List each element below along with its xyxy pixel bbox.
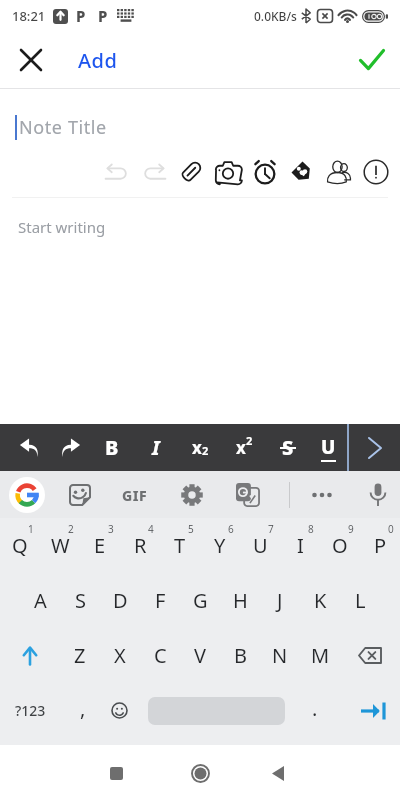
staticText: H xyxy=(233,587,248,614)
button[interactable] xyxy=(252,159,278,185)
button[interactable]: G xyxy=(180,573,220,628)
staticText: Note Title xyxy=(19,115,107,140)
button[interactable] xyxy=(98,755,134,791)
button[interactable] xyxy=(182,755,218,791)
button[interactable] xyxy=(180,483,204,507)
button[interactable]: T xyxy=(160,518,200,573)
button[interactable] xyxy=(236,483,260,507)
staticText: I xyxy=(297,532,304,559)
button[interactable]: O xyxy=(320,518,360,573)
button[interactable]: R xyxy=(120,518,160,573)
button[interactable] xyxy=(345,683,400,738)
button[interactable]: V xyxy=(180,628,220,683)
button[interactable]: Q xyxy=(0,518,40,573)
staticText: 4 xyxy=(148,522,154,536)
button[interactable] xyxy=(363,159,389,185)
button[interactable]: X xyxy=(100,628,140,683)
button[interactable] xyxy=(260,755,296,791)
button[interactable]: H xyxy=(220,573,260,628)
staticText: Z xyxy=(74,642,86,669)
button[interactable]: ?123 xyxy=(0,683,60,738)
button[interactable]: I xyxy=(280,518,320,573)
button[interactable] xyxy=(340,628,400,683)
staticText: 0 xyxy=(388,522,394,536)
button[interactable]: I xyxy=(134,424,178,471)
button[interactable]: L xyxy=(340,573,380,628)
staticText: N xyxy=(272,642,288,669)
staticText: T xyxy=(174,532,186,559)
staticText: Start writing xyxy=(18,217,106,237)
button[interactable] xyxy=(106,683,132,738)
button[interactable]: J xyxy=(260,573,300,628)
staticText: P xyxy=(98,6,108,26)
staticText: 1 xyxy=(28,522,34,536)
staticText: C xyxy=(154,642,167,669)
staticText: x xyxy=(192,436,202,459)
button[interactable]: F xyxy=(140,573,180,628)
button[interactable]: Z xyxy=(60,628,100,683)
button[interactable] xyxy=(9,477,45,513)
staticText: 5 xyxy=(188,522,194,536)
button[interactable] xyxy=(50,424,90,471)
staticText: ?123 xyxy=(15,701,46,720)
button[interactable] xyxy=(20,49,42,71)
button[interactable] xyxy=(178,159,204,185)
staticText: Q xyxy=(12,532,28,559)
button[interactable]: U xyxy=(240,518,280,573)
button[interactable] xyxy=(104,159,130,185)
button[interactable]: Note Title xyxy=(0,89,400,155)
staticText: X xyxy=(114,642,126,669)
staticText: J xyxy=(277,587,283,614)
button[interactable]: W xyxy=(40,518,80,573)
staticText: Y xyxy=(214,532,226,559)
staticText: M xyxy=(311,642,330,669)
staticText: 7 xyxy=(268,522,274,536)
button[interactable]: . xyxy=(285,683,345,738)
staticText: 2 xyxy=(202,443,209,458)
button[interactable]: A xyxy=(20,573,60,628)
button[interactable] xyxy=(66,481,94,509)
button[interactable] xyxy=(10,424,50,471)
button[interactable] xyxy=(359,48,385,72)
button[interactable]: N xyxy=(260,628,300,683)
button[interactable] xyxy=(215,159,241,185)
button[interactable]: B xyxy=(220,628,260,683)
button[interactable] xyxy=(141,159,167,185)
staticText: F xyxy=(155,587,166,614)
button[interactable]: E xyxy=(80,518,120,573)
button[interactable]: P xyxy=(360,518,400,573)
button[interactable]: U xyxy=(310,424,347,471)
staticText: GIF xyxy=(122,486,148,505)
staticText: O xyxy=(332,532,348,559)
staticText: 3 xyxy=(108,522,114,536)
staticText: L xyxy=(355,587,366,614)
staticText: . xyxy=(312,695,318,722)
button[interactable] xyxy=(310,483,334,507)
button[interactable]: B xyxy=(90,424,134,471)
staticText: D xyxy=(113,587,128,614)
button[interactable] xyxy=(0,628,60,683)
button[interactable]: Start writing xyxy=(0,198,400,256)
button[interactable]: x xyxy=(222,424,266,471)
button[interactable]: GIF xyxy=(118,481,152,509)
button[interactable]: K xyxy=(300,573,340,628)
button[interactable]: , xyxy=(60,683,106,738)
button[interactable] xyxy=(289,159,315,185)
button[interactable] xyxy=(326,159,352,185)
staticText: S xyxy=(75,587,86,614)
staticText: G xyxy=(193,587,208,614)
button[interactable]: S xyxy=(266,424,310,471)
staticText: W xyxy=(51,532,70,559)
button[interactable] xyxy=(366,483,390,507)
staticText: 6 xyxy=(228,522,234,536)
button[interactable]: C xyxy=(140,628,180,683)
button[interactable]: S xyxy=(60,573,100,628)
button[interactable] xyxy=(349,424,400,471)
button[interactable]: M xyxy=(300,628,340,683)
button[interactable]: x xyxy=(178,424,222,471)
staticText: , xyxy=(80,695,86,722)
button[interactable]: D xyxy=(100,573,140,628)
staticText: B xyxy=(234,642,247,669)
button[interactable]: Y xyxy=(200,518,240,573)
